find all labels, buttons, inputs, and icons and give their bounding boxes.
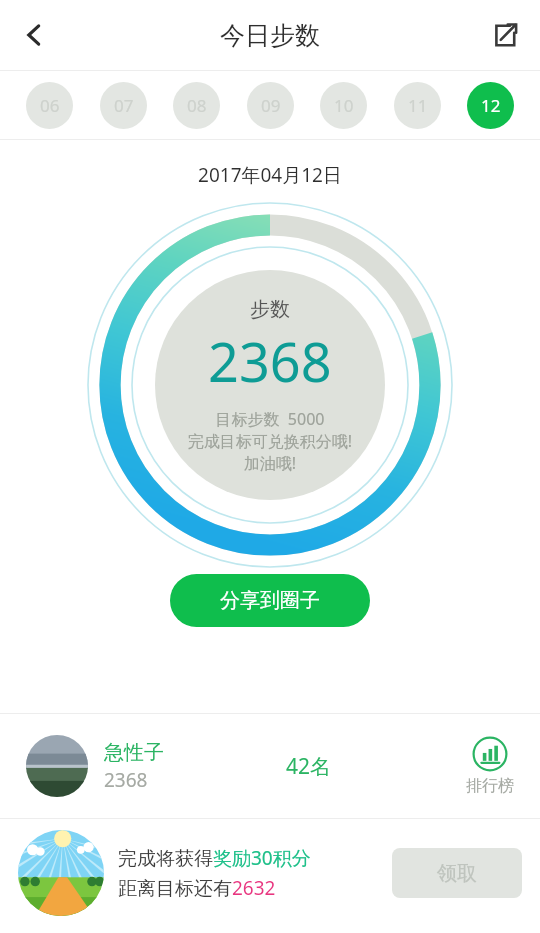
- staticText: 急性子: [104, 740, 164, 765]
- button[interactable]: 排行榜: [466, 736, 514, 796]
- button[interactable]: Share: [476, 7, 532, 63]
- button[interactable]: 急性子: [0, 714, 540, 818]
- staticText: 08: [187, 94, 207, 117]
- staticText: 09: [261, 94, 281, 117]
- staticText: 42名: [286, 752, 332, 781]
- staticText: 2368: [104, 767, 148, 793]
- staticText: 步数: [250, 297, 290, 322]
- button[interactable]: 06: [26, 82, 73, 129]
- button[interactable]: 领取: [392, 848, 522, 898]
- staticText: 07: [114, 94, 134, 117]
- button[interactable]: 11: [394, 82, 441, 129]
- staticText: 06: [40, 94, 60, 117]
- staticText: 12: [481, 94, 501, 117]
- staticText: 完成将获得奖励30积分: [118, 845, 311, 871]
- button[interactable]: 07: [100, 82, 147, 129]
- staticText: 2017年04月12日: [0, 162, 540, 188]
- staticText: 10: [334, 94, 354, 117]
- staticText: 距离目标还有2632: [118, 875, 276, 901]
- staticText: 领取: [437, 861, 477, 886]
- button[interactable]: 分享到圈子: [170, 574, 370, 627]
- button[interactable]: 10: [320, 82, 367, 129]
- button[interactable]: Back: [6, 7, 62, 63]
- staticText: 11: [408, 94, 428, 117]
- button[interactable]: 09: [247, 82, 294, 129]
- button[interactable]: 12: [467, 82, 514, 129]
- staticText: 目标步数 5000: [87, 408, 453, 430]
- staticText: 今日步数: [220, 20, 320, 51]
- staticText: 分享到圈子: [220, 588, 320, 613]
- staticText: 排行榜: [466, 776, 514, 796]
- staticText: 完成目标可兑换积分哦!: [87, 430, 453, 452]
- staticText: 2368: [208, 324, 332, 398]
- button[interactable]: 08: [173, 82, 220, 129]
- staticText: 加油哦!: [87, 452, 453, 474]
